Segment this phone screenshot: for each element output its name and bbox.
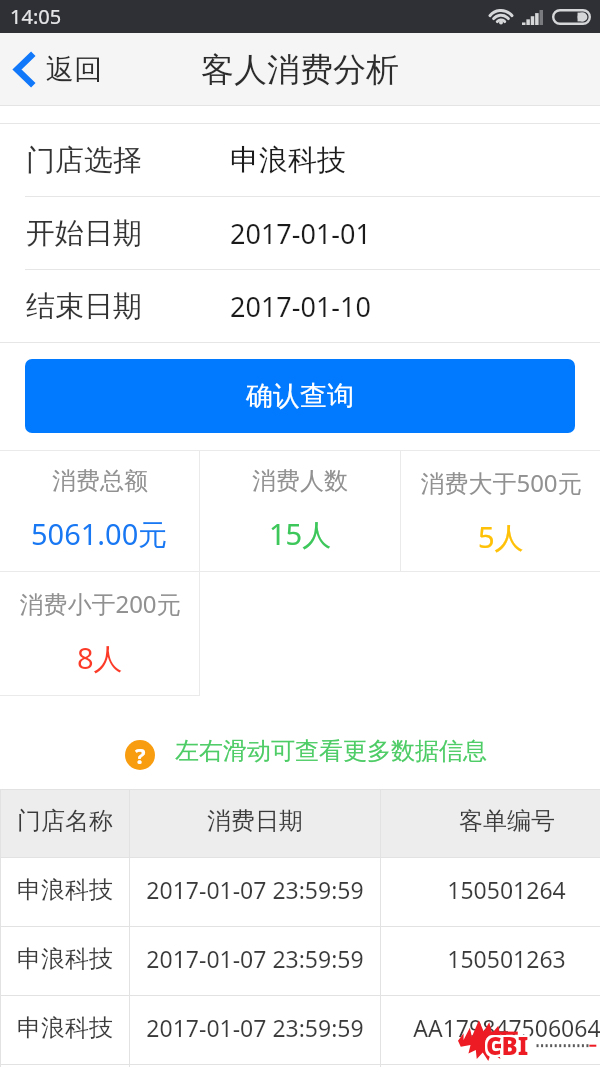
staticText: CBI [484,1027,527,1060]
button[interactable]: 开始日期 [0,197,600,269]
staticText: CBI [484,1031,527,1064]
button[interactable]: 确认查询 [25,359,575,433]
staticText: 申浪科技 [17,875,113,905]
staticText: ? [135,740,146,768]
staticText: 申浪科技 [17,944,113,974]
button[interactable]: 消费小于200元 [0,572,199,695]
button[interactable]: 申浪科技 [0,858,600,926]
staticText: 申浪科技 [230,142,346,179]
staticText: 14:05 [10,3,62,30]
staticText: 2017-01-07 23:59:59 [146,874,364,905]
staticText: CBI [486,1027,529,1060]
staticText: 消费小于200元 [19,587,181,620]
staticText: 2017-01-07 23:59:59 [146,943,364,974]
staticText: 客人消费分析 [201,49,399,91]
button[interactable]: 申浪科技 [0,996,600,1064]
staticText: CBI [488,1029,531,1062]
button[interactable]: 消费大于500元 [401,451,600,571]
staticText: CBI [484,1029,527,1062]
staticText: 门店名称 [17,806,113,836]
staticText: 2017-01-10 [230,288,371,325]
button[interactable]: 申浪科技 [0,927,600,995]
staticText: 开始日期 [26,215,142,252]
staticText: 门店选择 [26,142,142,179]
staticText: 申浪科技 [17,1013,113,1043]
staticText: 5061.00元 [31,514,168,554]
button[interactable]: 返回 [0,33,116,106]
staticText: CBI [488,1027,531,1060]
staticText: 15人 [269,514,332,554]
button[interactable]: 门店选择 [0,124,600,196]
button[interactable]: 消费人数 [200,451,400,571]
staticText: 返回 [46,52,102,87]
button[interactable]: Help [125,740,155,770]
staticText: 确认查询 [246,379,354,413]
staticText: 5人 [478,517,524,557]
staticText: CBI [486,1031,529,1064]
staticText: 消费总额 [52,466,148,496]
staticText: CBI [488,1031,531,1064]
staticText: 结束日期 [26,288,142,325]
staticText: 消费日期 [207,806,303,836]
staticText: 2017-01-01 [230,215,371,252]
button[interactable]: 消费总额 [0,451,199,571]
button[interactable]: 结束日期 [0,270,600,342]
staticText: 2017-01-07 23:59:59 [146,1012,364,1043]
staticText: 150501263 [447,943,566,974]
staticText: AA1798475060644 [413,1012,600,1043]
staticText: 消费大于500元 [420,466,582,499]
staticText: 消费人数 [252,466,348,496]
staticText: 8人 [77,638,123,678]
staticText: 客单编号 [459,806,555,836]
staticText: 150501264 [447,874,566,905]
staticText: 左右滑动可查看更多数据信息 [175,736,487,766]
staticText: CBI [486,1029,529,1062]
